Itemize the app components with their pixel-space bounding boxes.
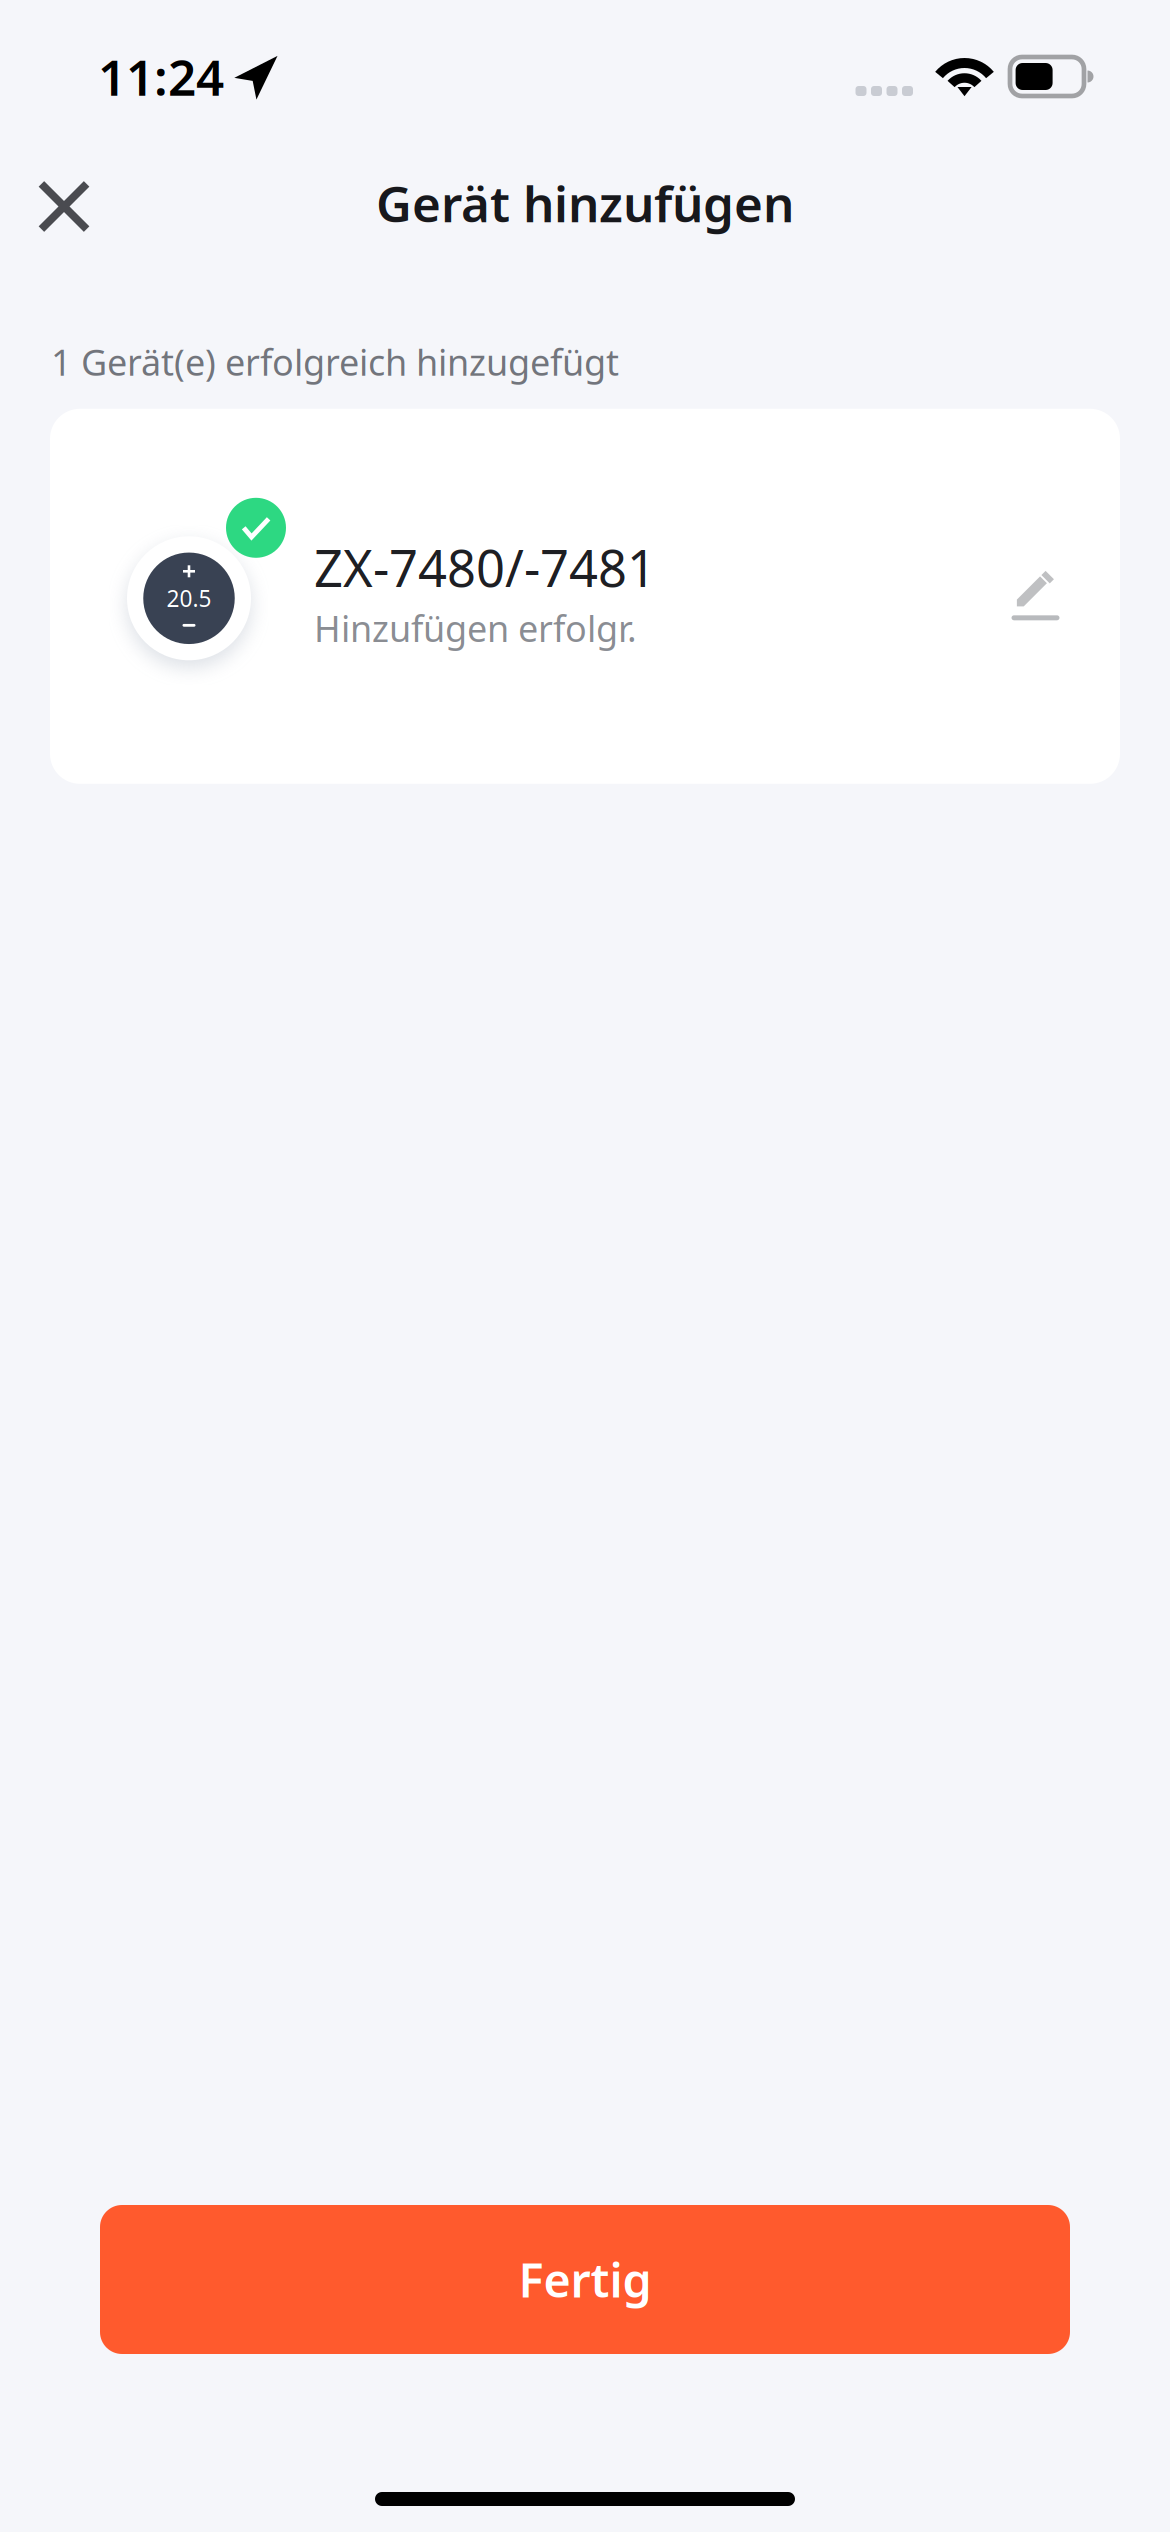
button[interactable]: 20.5 [50,409,1120,784]
staticText: Gerät hinzufügen [376,170,794,236]
staticText: Fertig [518,2248,651,2310]
button[interactable]: Fertig [100,2205,1070,2354]
button[interactable]: Schließen [20,159,108,247]
staticText: 20.5 [166,583,211,613]
staticText: ZX-7480/-7481 [314,534,656,601]
staticText: 11:24 [98,44,224,109]
staticText: Hinzufügen erfolgr. [314,604,637,652]
staticText: 1 Gerät(e) erfolgreich hinzugefügt [51,338,619,386]
